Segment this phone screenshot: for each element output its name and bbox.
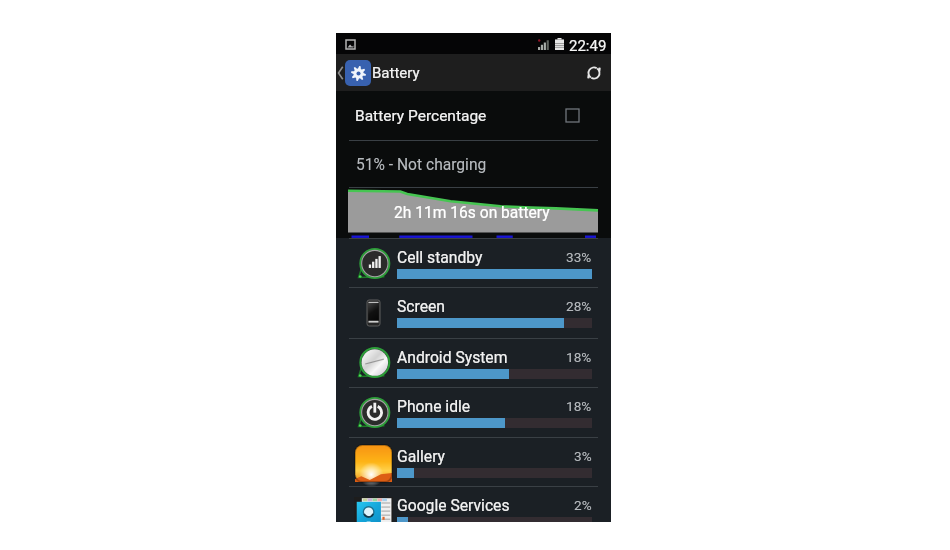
button[interactable]: Gallery: [336, 438, 611, 487]
staticText: Android System: [397, 348, 508, 366]
button[interactable]: Google Services: [336, 487, 611, 522]
button[interactable]: Battery: [336, 54, 611, 91]
staticText: 3%: [574, 448, 592, 464]
staticText: 18%: [566, 349, 592, 365]
staticText: 28%: [566, 298, 592, 314]
staticText: 2%: [574, 497, 592, 513]
staticText: Google Services: [397, 496, 510, 514]
staticText: Phone idle: [397, 397, 471, 415]
button[interactable]: Screen: [336, 288, 611, 337]
button[interactable]: Android System: [336, 339, 611, 387]
staticText: Gallery: [397, 447, 446, 465]
staticText: Battery Percentage: [355, 107, 487, 125]
staticText: 33%: [566, 249, 592, 265]
button[interactable]: Cell standby: [336, 239, 611, 288]
staticText: Battery: [372, 64, 420, 82]
staticText: 2h 11m 16s on battery: [394, 204, 550, 222]
staticText: 22:49: [569, 37, 607, 55]
button[interactable]: Refresh: [577, 54, 611, 91]
staticText: Screen: [397, 297, 445, 315]
button[interactable]: Battery Percentage: [336, 91, 611, 140]
staticText: Cell standby: [397, 248, 483, 266]
staticText: 51% - Not charging: [356, 156, 487, 174]
staticText: 18%: [566, 398, 592, 414]
button[interactable]: Phone idle: [336, 388, 611, 437]
button[interactable]: 51% - Not charging: [336, 141, 611, 188]
